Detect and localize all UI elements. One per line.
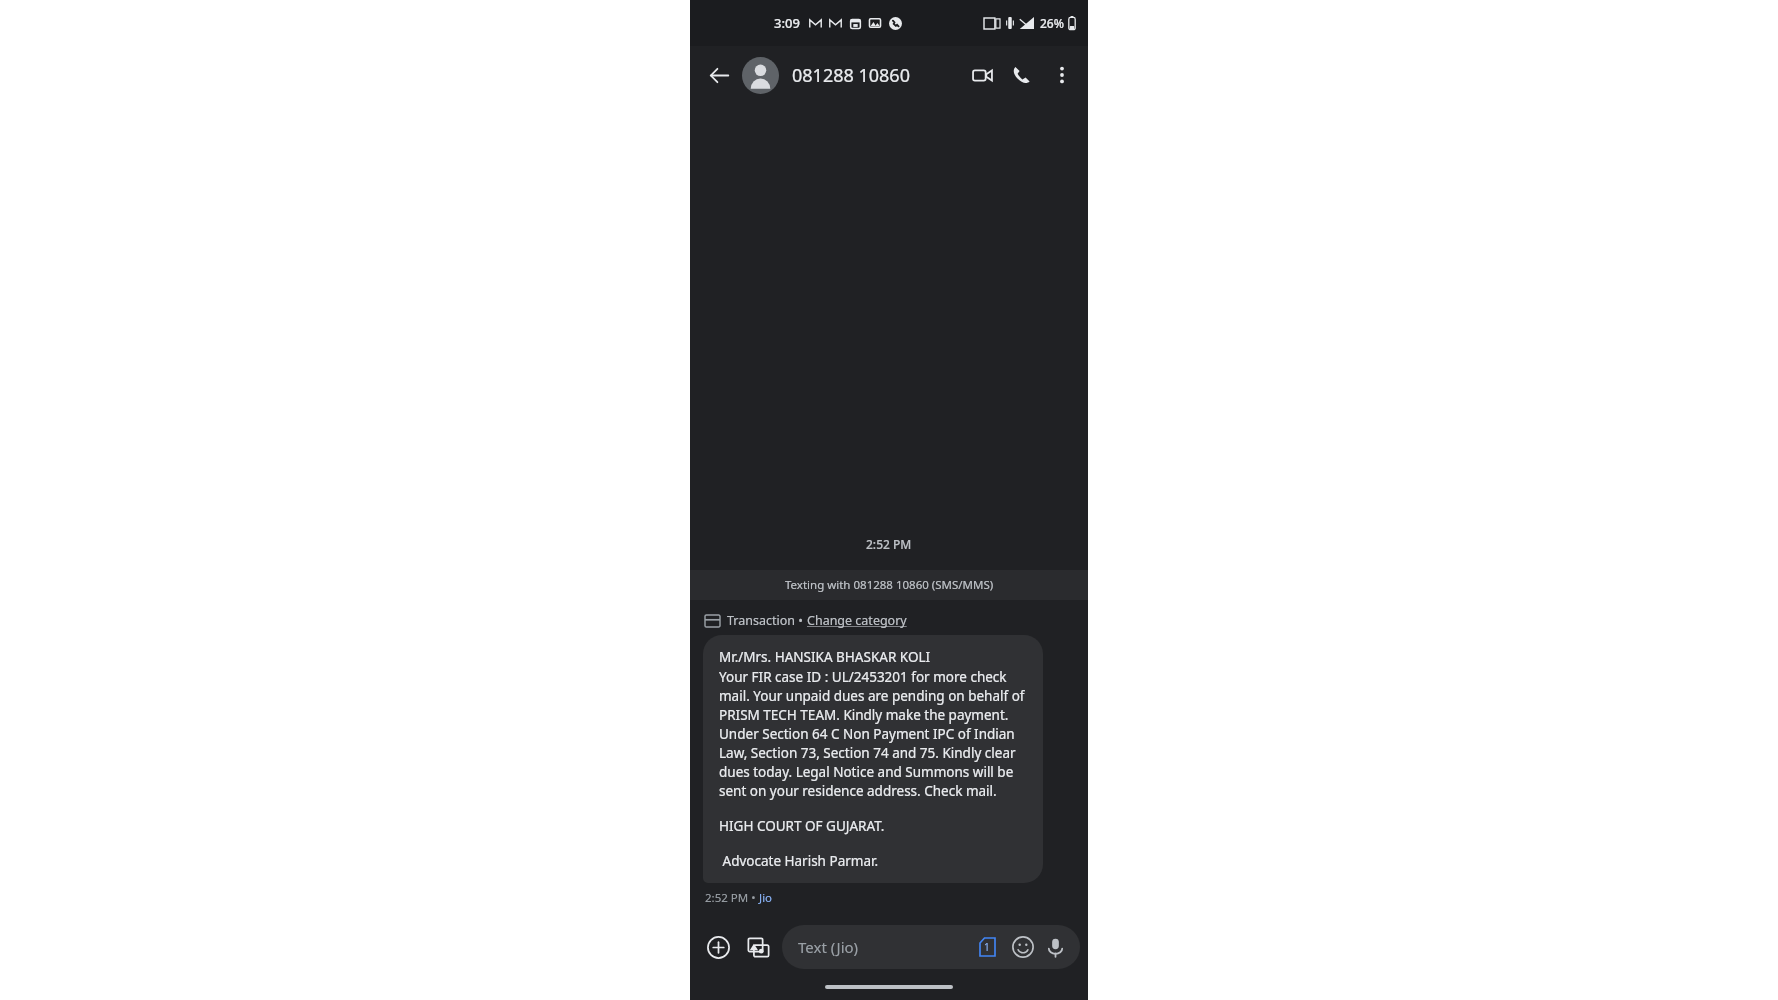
button[interactable]: 081288 10860 bbox=[742, 57, 962, 94]
button[interactable]: Text (Jio) bbox=[782, 925, 1080, 969]
button[interactable]: Voice input bbox=[1040, 932, 1070, 962]
staticText: 081288 10860 bbox=[792, 63, 910, 88]
staticText: Advocate Harish Parmar. bbox=[719, 852, 879, 870]
staticText: HIGH COURT OF GUJARAT. bbox=[719, 817, 885, 835]
staticText: Texting with 081288 10860 (SMS/MMS) bbox=[785, 577, 994, 593]
staticText: 26% bbox=[1040, 15, 1064, 31]
staticText: Change category bbox=[807, 612, 907, 629]
staticText: 3:09 bbox=[774, 14, 800, 32]
button[interactable]: More options bbox=[1042, 55, 1082, 95]
staticText: Mr./Mrs. HANSIKA BHASKAR KOLI Your FIR c… bbox=[719, 648, 1027, 800]
button[interactable]: Add attachment bbox=[698, 927, 738, 967]
button[interactable]: Emoji bbox=[1008, 932, 1038, 962]
staticText: 2:52 PM • bbox=[705, 890, 759, 906]
button[interactable]: Change category bbox=[807, 612, 907, 629]
button[interactable]: Call bbox=[1002, 55, 1042, 95]
staticText: 1 bbox=[984, 940, 990, 954]
button[interactable]: Back bbox=[700, 56, 738, 94]
button[interactable]: SIM 1 bbox=[972, 932, 1002, 962]
button[interactable]: Mr./Mrs. HANSIKA BHASKAR KOLI Your FIR c… bbox=[703, 635, 1043, 883]
staticText: Jio bbox=[759, 890, 773, 906]
staticText: Transaction • bbox=[727, 612, 807, 629]
button[interactable]: Camera and gallery bbox=[738, 927, 778, 967]
staticText: Text (Jio) bbox=[798, 937, 859, 957]
button[interactable]: Video call bbox=[962, 55, 1002, 95]
staticText: 2:52 PM bbox=[866, 536, 912, 552]
